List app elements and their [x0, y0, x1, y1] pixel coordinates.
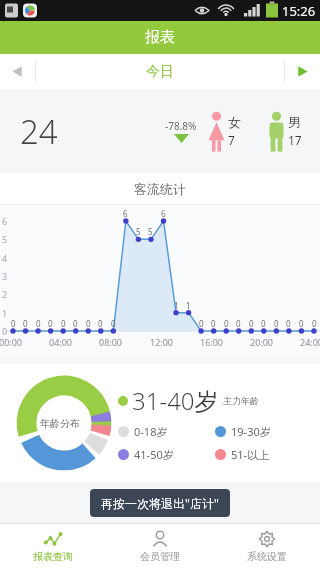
staticText: 今日	[146, 63, 174, 81]
staticText: 08:00	[99, 336, 123, 348]
staticText: 报表	[145, 28, 175, 47]
staticText: 51-以上	[231, 447, 270, 462]
staticText: 31-40岁	[132, 384, 219, 417]
staticText: 17	[288, 132, 302, 148]
staticText: 0	[261, 318, 266, 329]
staticText: 年龄分布	[40, 417, 80, 430]
staticText: 2	[2, 288, 8, 300]
staticText: 20:00	[250, 336, 274, 348]
staticText: 00:00	[0, 336, 23, 348]
staticText: 4	[2, 252, 8, 264]
staticText: 24	[20, 109, 58, 154]
staticText: 6	[2, 215, 8, 227]
staticText: 0	[48, 318, 53, 329]
staticText: 1	[186, 300, 191, 311]
staticText: 0	[236, 318, 241, 329]
staticText: 0	[98, 318, 103, 329]
staticText: 41-50岁	[134, 447, 174, 462]
button[interactable]: 会员管理	[106, 524, 213, 568]
staticText: 0	[224, 318, 229, 329]
staticText: 客流统计	[134, 181, 186, 197]
staticText: 0	[2, 325, 8, 337]
staticText: 0	[73, 318, 78, 329]
staticText: 6	[123, 208, 128, 219]
button[interactable]: Previous period	[0, 54, 35, 89]
staticText: 5	[136, 226, 141, 237]
staticText: 0	[274, 318, 279, 329]
staticText: 5	[148, 226, 153, 237]
staticText: 男	[288, 114, 301, 130]
staticText: 0	[23, 318, 28, 329]
button[interactable]: 客流统计	[0, 173, 320, 204]
staticText: 女	[228, 114, 241, 130]
staticText: 0	[211, 318, 216, 329]
staticText: 系统设置	[247, 550, 287, 563]
staticText: 15:26	[282, 2, 316, 20]
staticText: 0	[199, 318, 204, 329]
staticText: 0	[286, 318, 291, 329]
staticText: 0	[61, 318, 66, 329]
staticText: 0	[111, 318, 116, 329]
staticText: 0	[249, 318, 254, 329]
button[interactable]: 今日	[36, 54, 284, 89]
staticText: 0	[312, 318, 317, 329]
staticText: 1	[174, 300, 179, 311]
staticText: 会员管理	[140, 550, 180, 563]
staticText: 7	[228, 132, 235, 148]
staticText: 24:00	[300, 336, 320, 348]
staticText: 04:00	[49, 336, 73, 348]
button[interactable]: 报表查询	[0, 524, 106, 568]
staticText: -78.8%	[165, 119, 197, 133]
staticText: 5	[2, 233, 8, 245]
staticText: 报表查询	[33, 550, 73, 563]
staticText: 19-30岁	[231, 424, 271, 439]
staticText: 12:00	[150, 336, 174, 348]
staticText: 0-18岁	[134, 424, 168, 439]
staticText: 6	[161, 208, 166, 219]
staticText: 3	[2, 270, 8, 282]
button[interactable]: Next period	[285, 54, 320, 89]
staticText: 1	[2, 307, 8, 319]
staticText: 0	[11, 318, 16, 329]
staticText: 0	[299, 318, 304, 329]
staticText: 0	[36, 318, 41, 329]
staticText: 16:00	[200, 336, 224, 348]
button[interactable]: 系统设置	[213, 524, 320, 568]
staticText: 0	[86, 318, 91, 329]
staticText: 主力年龄	[223, 395, 259, 406]
staticText: 再按一次将退出"店计"	[101, 495, 219, 511]
